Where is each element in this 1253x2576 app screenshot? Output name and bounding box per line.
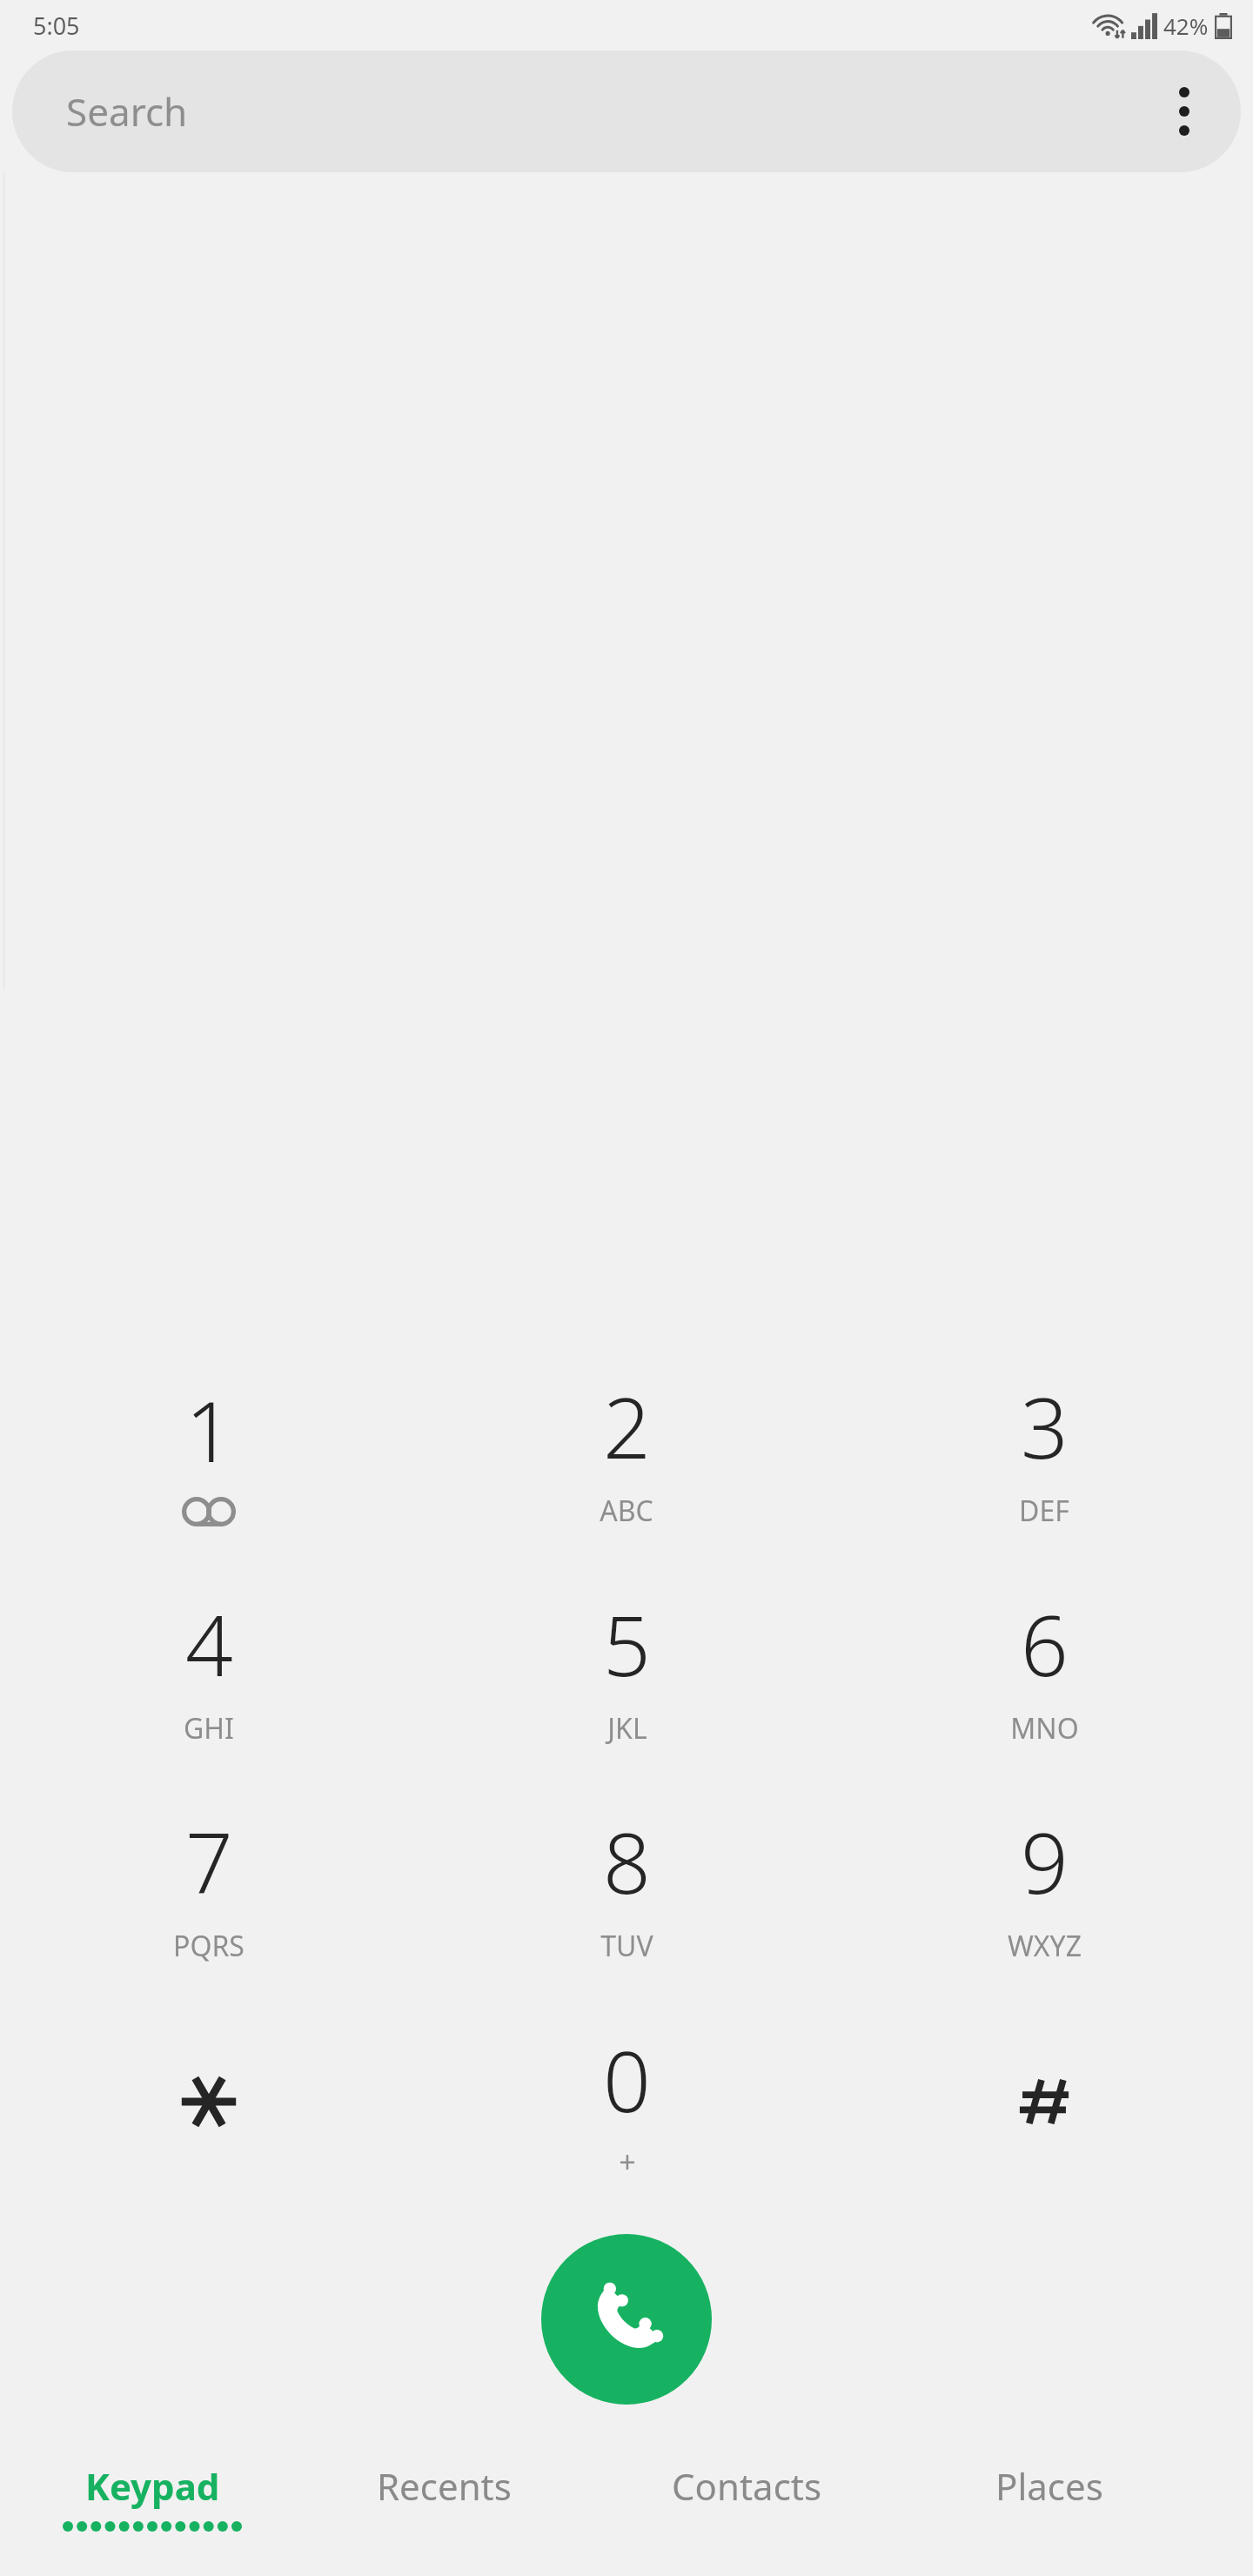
button[interactable]: 6 xyxy=(835,1558,1253,1775)
staticText: 7 xyxy=(185,1804,233,1918)
staticText: 8 xyxy=(603,1804,651,1918)
staticText: Recents xyxy=(377,2461,512,2511)
button[interactable]: 9 xyxy=(835,1775,1253,1993)
staticText: TUV xyxy=(600,1927,653,1965)
staticText: GHI xyxy=(184,1709,234,1748)
staticText: 42% xyxy=(1163,10,1209,41)
button[interactable]: Search xyxy=(12,50,1241,172)
staticText: 4 xyxy=(185,1587,233,1701)
button[interactable]: 3 xyxy=(835,1340,1253,1558)
staticText: 5:05 xyxy=(33,10,80,42)
staticText: Places xyxy=(995,2461,1103,2511)
button[interactable]: 8 xyxy=(418,1775,835,1993)
button[interactable]: 1 xyxy=(0,1340,418,1558)
button[interactable] xyxy=(835,1993,1253,2210)
staticText: 3 xyxy=(1021,1369,1069,1483)
staticText: MNO xyxy=(1010,1709,1079,1748)
button[interactable]: 7 xyxy=(0,1775,418,1993)
staticText: Search xyxy=(66,85,188,138)
button[interactable]: 2 xyxy=(418,1340,835,1558)
button[interactable]: Places xyxy=(898,2428,1201,2576)
button[interactable]: More options xyxy=(1128,50,1241,172)
button[interactable]: Call xyxy=(541,2234,712,2405)
staticText: 6 xyxy=(1021,1587,1069,1701)
staticText: 2 xyxy=(603,1369,651,1483)
staticText: WXYZ xyxy=(1008,1927,1082,1965)
button[interactable]: 4 xyxy=(0,1558,418,1775)
staticText: 5 xyxy=(603,1587,651,1701)
staticText: 9 xyxy=(1021,1804,1069,1918)
staticText: 0 xyxy=(603,2023,651,2137)
staticText: Keypad xyxy=(85,2461,220,2511)
button[interactable]: Keypad xyxy=(12,2428,292,2576)
button[interactable] xyxy=(0,1993,418,2210)
staticText: DEF xyxy=(1019,1492,1069,1530)
button[interactable]: 0 xyxy=(418,1993,835,2210)
staticText: + xyxy=(619,2142,636,2182)
button[interactable]: Contacts xyxy=(595,2428,898,2576)
staticText: 1 xyxy=(185,1372,233,1486)
staticText: PQRS xyxy=(173,1927,245,1965)
button[interactable]: 5 xyxy=(418,1558,835,1775)
staticText: Contacts xyxy=(672,2461,822,2511)
staticText: ABC xyxy=(600,1492,653,1530)
button[interactable]: Recents xyxy=(292,2428,595,2576)
staticText: JKL xyxy=(607,1709,647,1748)
